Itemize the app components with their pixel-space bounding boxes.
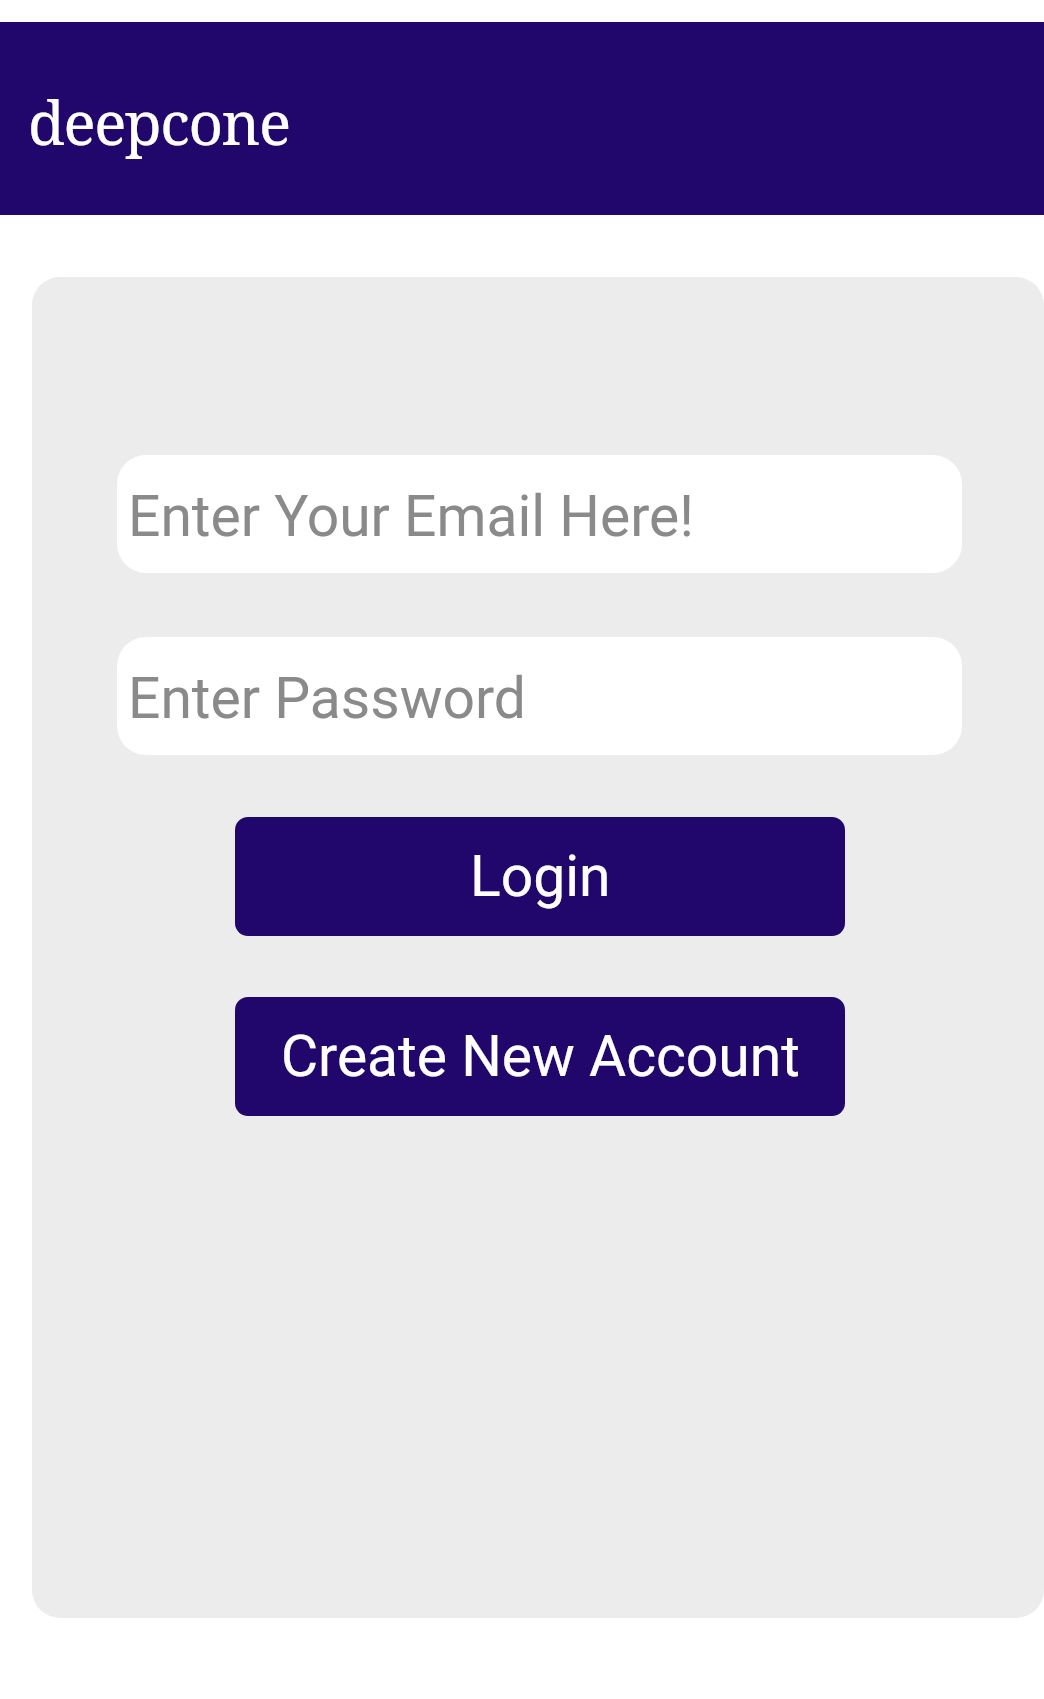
button[interactable]: Enter Password xyxy=(117,637,962,755)
staticText: Enter Your Email Here! xyxy=(128,483,694,550)
staticText: Login xyxy=(470,843,611,910)
button[interactable]: Create New Account xyxy=(235,997,845,1116)
staticText: Enter Password xyxy=(128,665,526,732)
button[interactable]: Enter Your Email Here! xyxy=(117,455,962,573)
button[interactable]: Login xyxy=(235,817,845,936)
staticText: deepcone xyxy=(28,81,290,163)
staticText: Create New Account xyxy=(281,1023,800,1090)
